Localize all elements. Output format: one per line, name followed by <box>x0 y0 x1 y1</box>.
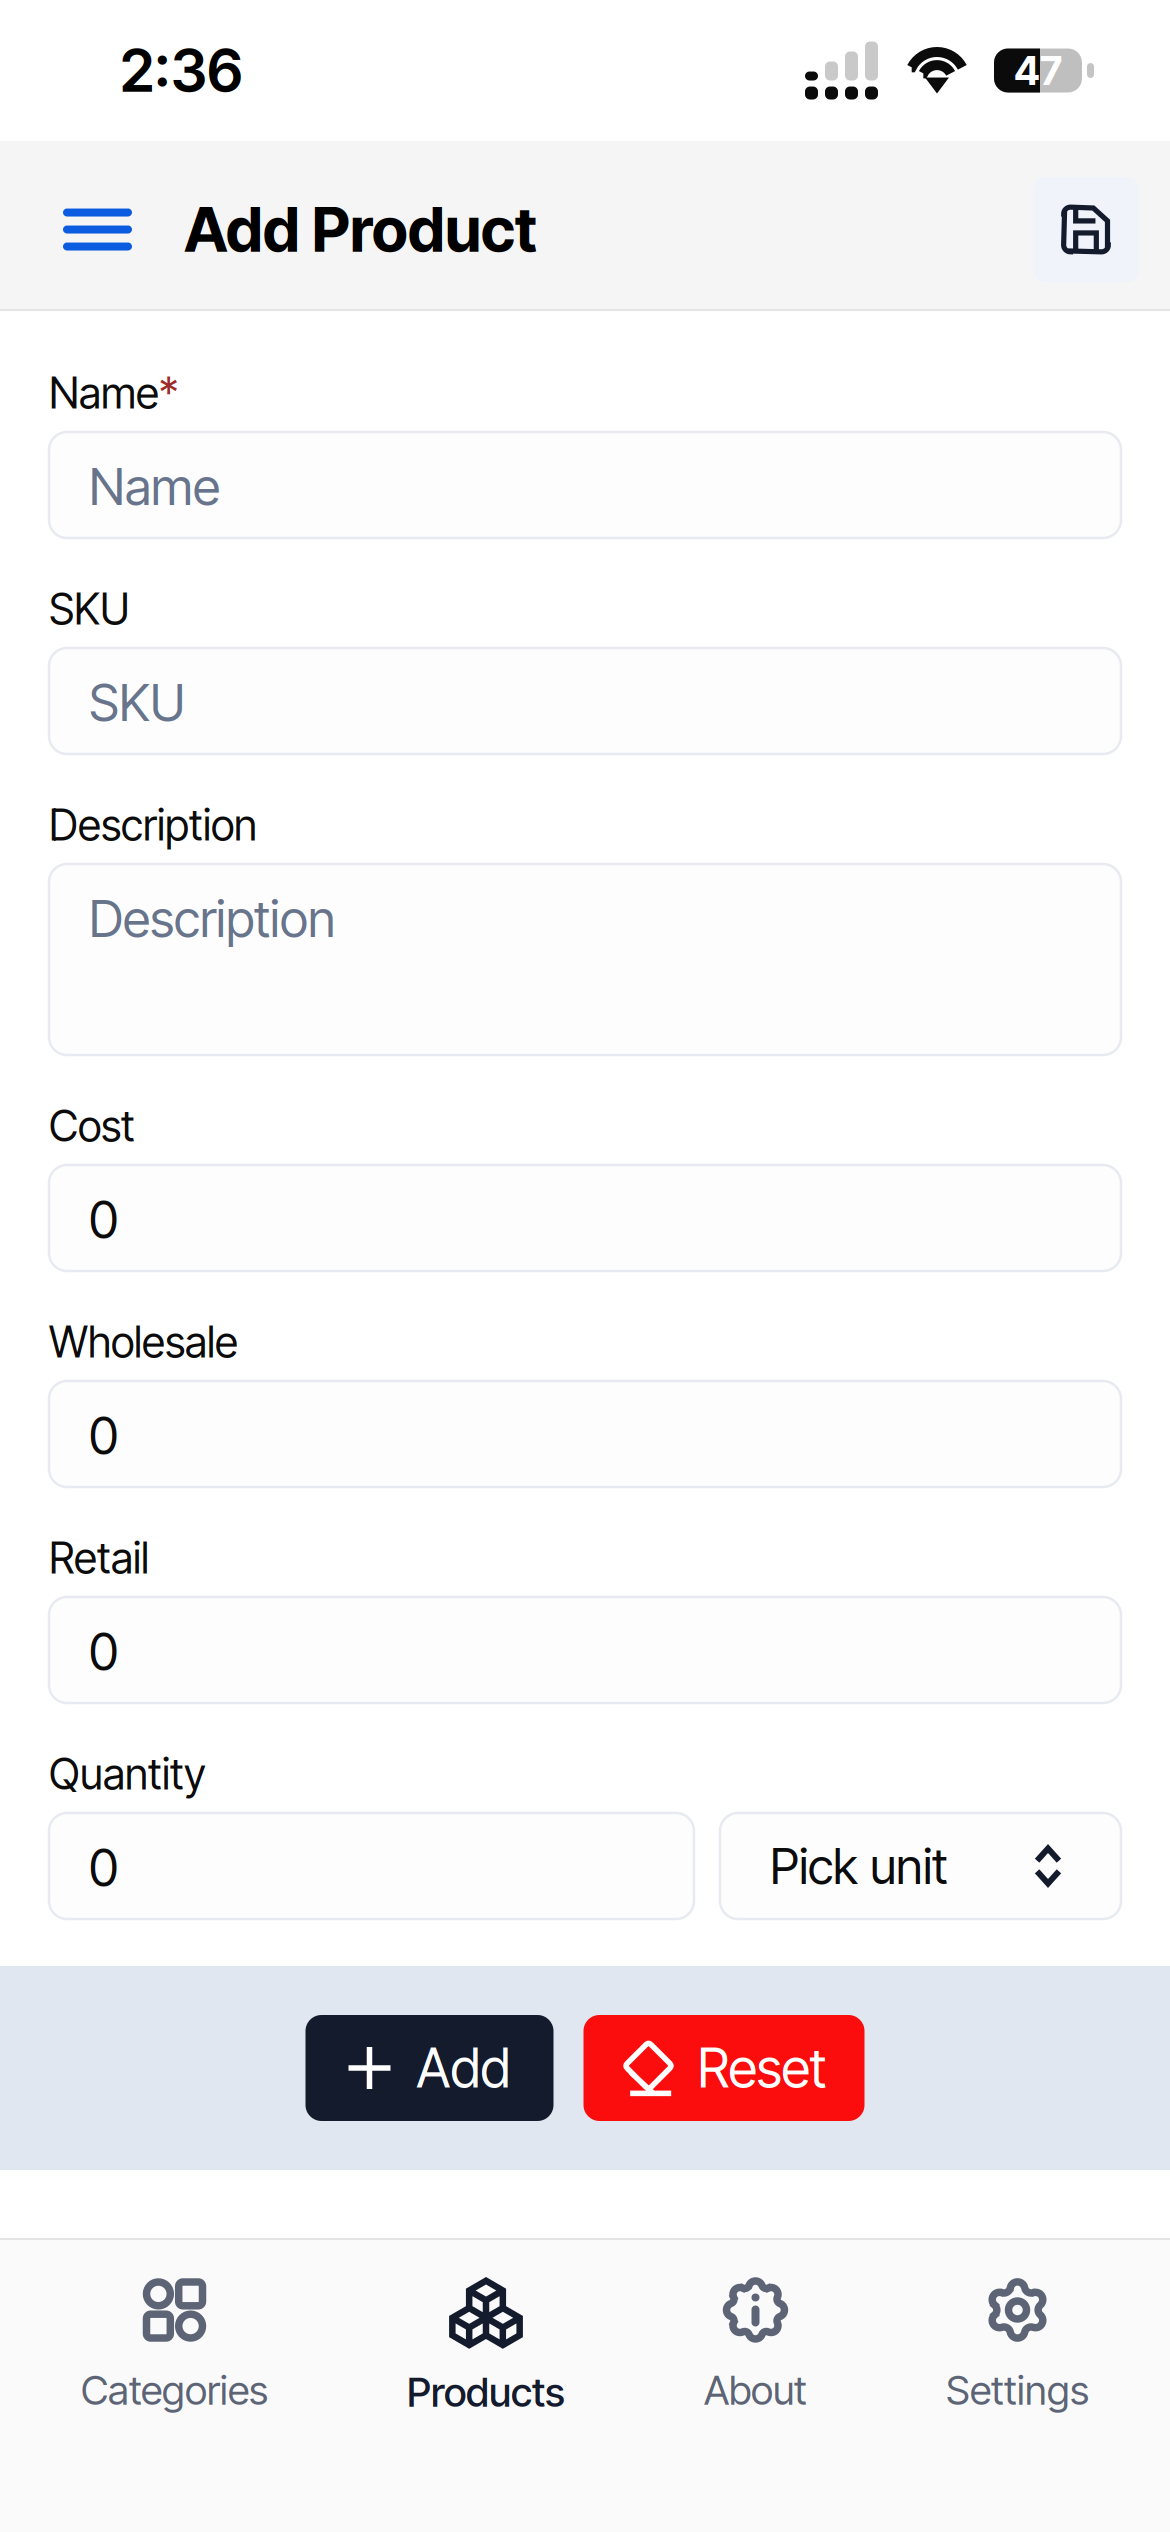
staticText: * <box>159 367 178 419</box>
button[interactable]: Settings <box>946 2279 1089 2414</box>
staticText: 2:36 <box>120 35 243 106</box>
staticText: Description <box>89 888 335 949</box>
staticText: Description <box>49 799 257 851</box>
staticText: Categories <box>81 2366 268 2414</box>
staticText: Name <box>49 367 159 419</box>
staticText: Products <box>407 2368 565 2416</box>
button[interactable]: Save <box>1033 177 1139 282</box>
staticText: 0 <box>89 1189 118 1250</box>
button[interactable]: Products <box>407 2277 565 2416</box>
staticText: SKU <box>89 672 185 733</box>
button[interactable]: About <box>704 2279 807 2414</box>
button[interactable]: Add <box>305 2015 553 2121</box>
staticText: Settings <box>946 2366 1089 2414</box>
staticText: SKU <box>49 583 130 635</box>
staticText: 0 <box>89 1405 118 1466</box>
button[interactable]: Reset <box>583 2015 864 2121</box>
staticText: Wholesale <box>49 1316 238 1368</box>
staticText: Reset <box>697 2036 826 2100</box>
button[interactable]: Pick unit <box>720 1813 1121 1919</box>
staticText: Quantity <box>49 1748 206 1800</box>
staticText: 0 <box>89 1837 118 1898</box>
staticText: Pick unit <box>770 1836 948 1896</box>
staticText: Cost <box>49 1100 135 1152</box>
staticText: 0 <box>89 1621 118 1682</box>
staticText: Name <box>89 456 220 517</box>
button[interactable]: Menu <box>63 181 132 277</box>
staticText: Retail <box>49 1532 149 1584</box>
staticText: Add <box>416 2036 510 2100</box>
staticText: About <box>704 2366 807 2414</box>
staticText: Add Product <box>184 192 537 267</box>
button[interactable]: Categories <box>81 2279 268 2414</box>
staticText: 47 <box>1014 46 1062 95</box>
